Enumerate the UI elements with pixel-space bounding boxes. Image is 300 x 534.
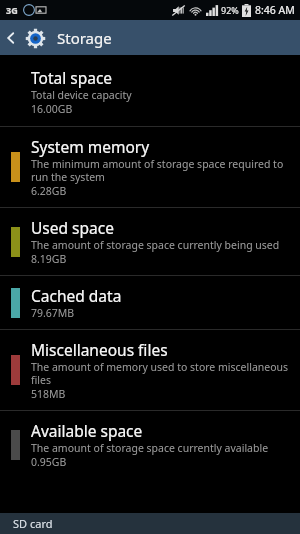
staticText: Storage <box>57 28 112 48</box>
staticText: The minimum amount of storage space requ… <box>31 157 290 184</box>
staticText: Used space <box>31 217 114 238</box>
staticText: 79.67MB <box>31 306 75 320</box>
staticText: Total space <box>31 67 113 88</box>
staticText: The amount of storage space currently av… <box>31 441 269 455</box>
staticText: Miscellaneous files <box>31 339 168 360</box>
button[interactable]: System memory <box>0 127 300 207</box>
button[interactable]: Total space <box>0 55 300 126</box>
staticText: 6.28GB <box>31 184 67 198</box>
staticText: 3G <box>6 4 18 16</box>
staticText: 0.95GB <box>31 455 67 469</box>
staticText: 518MB <box>31 387 66 401</box>
staticText: Total device capacity <box>31 88 132 102</box>
button[interactable]: Used space <box>0 208 300 275</box>
button[interactable]: Back <box>0 20 22 55</box>
staticText: 8:46 AM <box>255 3 295 17</box>
staticText: System memory <box>31 136 150 157</box>
button[interactable]: Miscellaneous files <box>0 330 300 410</box>
button[interactable]: Available space <box>0 411 300 478</box>
staticText: The amount of memory used to store misce… <box>31 360 290 387</box>
staticText: Available space <box>31 420 143 441</box>
staticText: 92% <box>221 4 239 16</box>
staticText: SD card <box>13 516 53 531</box>
staticText: The amount of storage space currently be… <box>31 238 280 252</box>
staticText: Cached data <box>31 285 122 306</box>
button[interactable]: Cached data <box>0 276 300 329</box>
staticText: 16.00GB <box>31 102 73 116</box>
staticText: 8.19GB <box>31 252 67 266</box>
